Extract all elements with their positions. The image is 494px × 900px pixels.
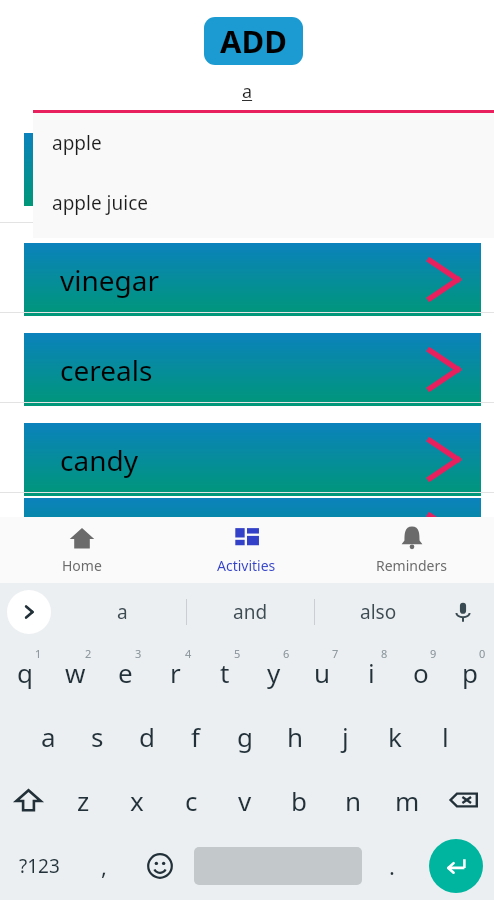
staticText: candy xyxy=(60,441,138,479)
button[interactable]: vinegar xyxy=(24,243,481,316)
staticText: Home xyxy=(62,556,102,575)
button[interactable]: ?123 xyxy=(0,832,78,900)
staticText: h xyxy=(287,719,304,754)
staticText: k xyxy=(388,719,402,754)
staticText: also xyxy=(360,599,397,625)
button[interactable]: f xyxy=(171,704,220,768)
button[interactable]: d xyxy=(122,704,171,768)
staticText: a xyxy=(41,719,56,754)
staticText: strawberry xyxy=(60,151,203,189)
button[interactable]: t xyxy=(200,640,249,704)
staticText: u xyxy=(314,655,331,690)
button[interactable]: z xyxy=(56,768,110,832)
button[interactable]: c xyxy=(164,768,218,832)
button[interactable]: Backspace xyxy=(434,768,494,832)
button[interactable]: l xyxy=(420,704,470,768)
button[interactable]: y xyxy=(249,640,298,704)
button[interactable]: h xyxy=(270,704,320,768)
button[interactable]: u xyxy=(298,640,347,704)
button[interactable]: , xyxy=(78,832,130,900)
staticText: y xyxy=(267,655,281,690)
button[interactable]: p xyxy=(445,640,494,704)
button[interactable]: strawberry xyxy=(24,133,481,206)
button[interactable]: Reminders xyxy=(329,517,494,583)
staticText: r xyxy=(170,655,181,690)
staticText: m xyxy=(395,783,420,818)
staticText: n xyxy=(345,783,362,818)
button[interactable]: a xyxy=(58,583,186,640)
button[interactable]: ADD xyxy=(204,17,303,65)
staticText: . xyxy=(389,851,395,881)
button[interactable]: a xyxy=(24,704,73,768)
button[interactable]: candy xyxy=(24,423,481,496)
staticText: Activities xyxy=(217,556,276,575)
staticText: 4 xyxy=(185,646,192,661)
staticText: 7 xyxy=(332,646,339,661)
button[interactable]: . xyxy=(366,832,418,900)
button[interactable]: q xyxy=(0,640,50,704)
staticText: x xyxy=(130,783,144,818)
staticText: 5 xyxy=(234,646,241,661)
staticText: b xyxy=(291,783,307,818)
staticText: c xyxy=(185,783,198,818)
staticText: o xyxy=(413,655,429,690)
staticText: 1 xyxy=(35,646,42,661)
staticText: z xyxy=(77,783,90,818)
staticText: j xyxy=(342,719,349,754)
button[interactable]: o xyxy=(396,640,445,704)
staticText: Reminders xyxy=(376,556,447,575)
button[interactable]: s xyxy=(73,704,122,768)
button[interactable]: and xyxy=(187,583,314,640)
staticText: q xyxy=(17,655,33,690)
button[interactable]: cereals xyxy=(24,333,481,406)
staticText: 8 xyxy=(381,646,388,661)
staticText: e xyxy=(118,655,133,690)
button[interactable]: e xyxy=(100,640,150,704)
staticText: 6 xyxy=(283,646,290,661)
staticText: g xyxy=(237,719,253,754)
staticText: t xyxy=(220,655,230,690)
button[interactable]: b xyxy=(272,768,326,832)
button[interactable]: i xyxy=(347,640,396,704)
button[interactable]: r xyxy=(150,640,200,704)
button[interactable]: v xyxy=(218,768,272,832)
button[interactable]: g xyxy=(220,704,270,768)
button[interactable]: j xyxy=(320,704,370,768)
staticText: a xyxy=(117,599,128,625)
button[interactable]: Home xyxy=(0,517,164,583)
staticText: , xyxy=(101,851,107,881)
button[interactable]: More suggestions xyxy=(7,590,51,634)
button[interactable]: Shift xyxy=(0,768,56,832)
staticText: 2 xyxy=(85,646,92,661)
button[interactable]: apple xyxy=(33,113,494,173)
staticText: apple xyxy=(52,130,102,156)
button[interactable]: k xyxy=(370,704,420,768)
staticText: and xyxy=(233,599,268,625)
staticText: ?123 xyxy=(19,853,60,879)
staticText: f xyxy=(191,719,200,754)
button[interactable] xyxy=(24,498,481,571)
staticText: a xyxy=(242,79,253,104)
button[interactable]: Enter xyxy=(429,839,483,893)
staticText: cereals xyxy=(60,351,153,389)
staticText: v xyxy=(238,783,252,818)
button[interactable]: m xyxy=(380,768,434,832)
button[interactable]: Emoji xyxy=(130,832,190,900)
button[interactable]: n xyxy=(326,768,380,832)
staticText: s xyxy=(91,719,104,754)
staticText: 9 xyxy=(430,646,437,661)
button[interactable]: Voice input xyxy=(446,595,480,629)
staticText: p xyxy=(462,655,478,690)
staticText: apple juice xyxy=(52,190,148,216)
staticText: 3 xyxy=(135,646,142,661)
button[interactable]: also xyxy=(315,583,442,640)
button[interactable]: x xyxy=(110,768,164,832)
staticText: ADD xyxy=(220,20,287,62)
staticText: vinegar xyxy=(60,261,160,299)
button[interactable]: apple juice xyxy=(33,173,494,233)
staticText: l xyxy=(442,719,449,754)
staticText: 0 xyxy=(479,646,486,661)
button[interactable]: w xyxy=(50,640,100,704)
button[interactable]: Activities xyxy=(164,517,329,583)
